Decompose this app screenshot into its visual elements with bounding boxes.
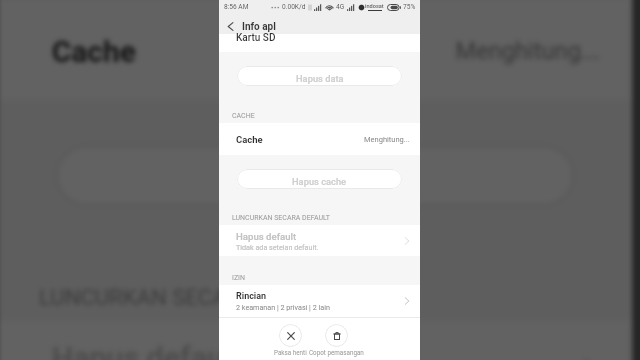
button[interactable]: Cache (0, 0, 632, 100)
staticText: Hapus default (52, 340, 244, 360)
staticText: 0.00K/d (282, 3, 306, 11)
staticText: Hapus cache (292, 176, 347, 187)
staticText: Menghitung... (364, 135, 410, 144)
staticText: IZIN (232, 274, 245, 282)
staticText: Info apl (242, 21, 276, 33)
button[interactable]: Back (219, 14, 242, 34)
staticText: Hapus default (236, 231, 297, 242)
button[interactable]: Hapus cache (55, 144, 575, 207)
staticText: Rincian (236, 291, 267, 302)
button[interactable]: Hapus default (219, 225, 420, 256)
staticText: Kartu SD (236, 32, 276, 44)
staticText: Copot pemasangan (309, 349, 364, 356)
staticText: Tidak ada setelan default. (236, 243, 319, 251)
staticText: LUNCURKAN SECARA DEFAULT (39, 286, 351, 311)
button[interactable]: Copot pemasangan (309, 324, 364, 356)
staticText: LUNCURKAN SECARA DEFAULT (232, 214, 331, 222)
button[interactable]: Paksa henti (274, 324, 307, 356)
button[interactable]: Cache (219, 123, 420, 155)
staticText: indosat (365, 3, 384, 10)
staticText: Menghitung... (455, 37, 601, 65)
button[interactable]: Hapus cache (237, 169, 402, 189)
staticText: Cache (236, 134, 263, 145)
staticText: Hapus data (296, 73, 344, 84)
staticText: 8:56 AM (224, 3, 249, 11)
staticText: Hapus cache (228, 166, 402, 201)
staticText: 75% (403, 3, 416, 11)
button[interactable]: Hapus default (0, 321, 632, 360)
staticText: Paksa henti (274, 349, 307, 356)
button[interactable]: Hapus data (237, 66, 402, 86)
staticText: 2 keamanan | 2 privasi | 2 lain (236, 303, 330, 311)
staticText: 4G (336, 3, 345, 11)
button[interactable]: Rincian (219, 285, 420, 317)
staticText: CACHE (232, 112, 255, 120)
staticText: Cache (52, 34, 137, 68)
